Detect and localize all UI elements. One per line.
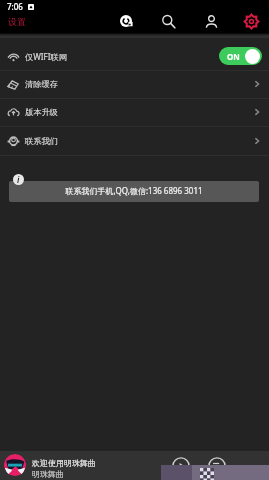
staticText: 设置 (8, 16, 26, 27)
staticText: 联系我们 (25, 136, 58, 146)
staticText: 版本升级 (25, 107, 58, 117)
staticText: i (17, 174, 20, 185)
button[interactable]: Profile (199, 9, 223, 33)
staticText: 欢迎使用明珠舞曲 (32, 458, 96, 468)
button[interactable]: Play (170, 455, 191, 476)
staticText: 仅WIFI联网 (25, 51, 67, 62)
staticText: ON (227, 51, 240, 62)
button[interactable]: 版本升级 (0, 98, 269, 126)
staticText: 7:06 (7, 1, 23, 12)
button[interactable]: Music (114, 9, 138, 33)
staticText: 联系我们手机,QQ,微信:136 6896 3011 (65, 185, 203, 196)
button[interactable]: Search (156, 9, 180, 33)
staticText: 明珠舞曲 (32, 469, 64, 479)
button[interactable]: Album art (4, 454, 26, 476)
button[interactable]: 清除缓存 (0, 70, 269, 98)
button[interactable]: Playlist (206, 455, 227, 476)
staticText: 清除缓存 (25, 79, 58, 89)
button[interactable]: ON (219, 47, 262, 65)
button[interactable]: 仅WIFI联网 (0, 42, 269, 70)
button[interactable]: Settings (239, 9, 263, 33)
button[interactable]: 联系我们 (0, 127, 269, 155)
